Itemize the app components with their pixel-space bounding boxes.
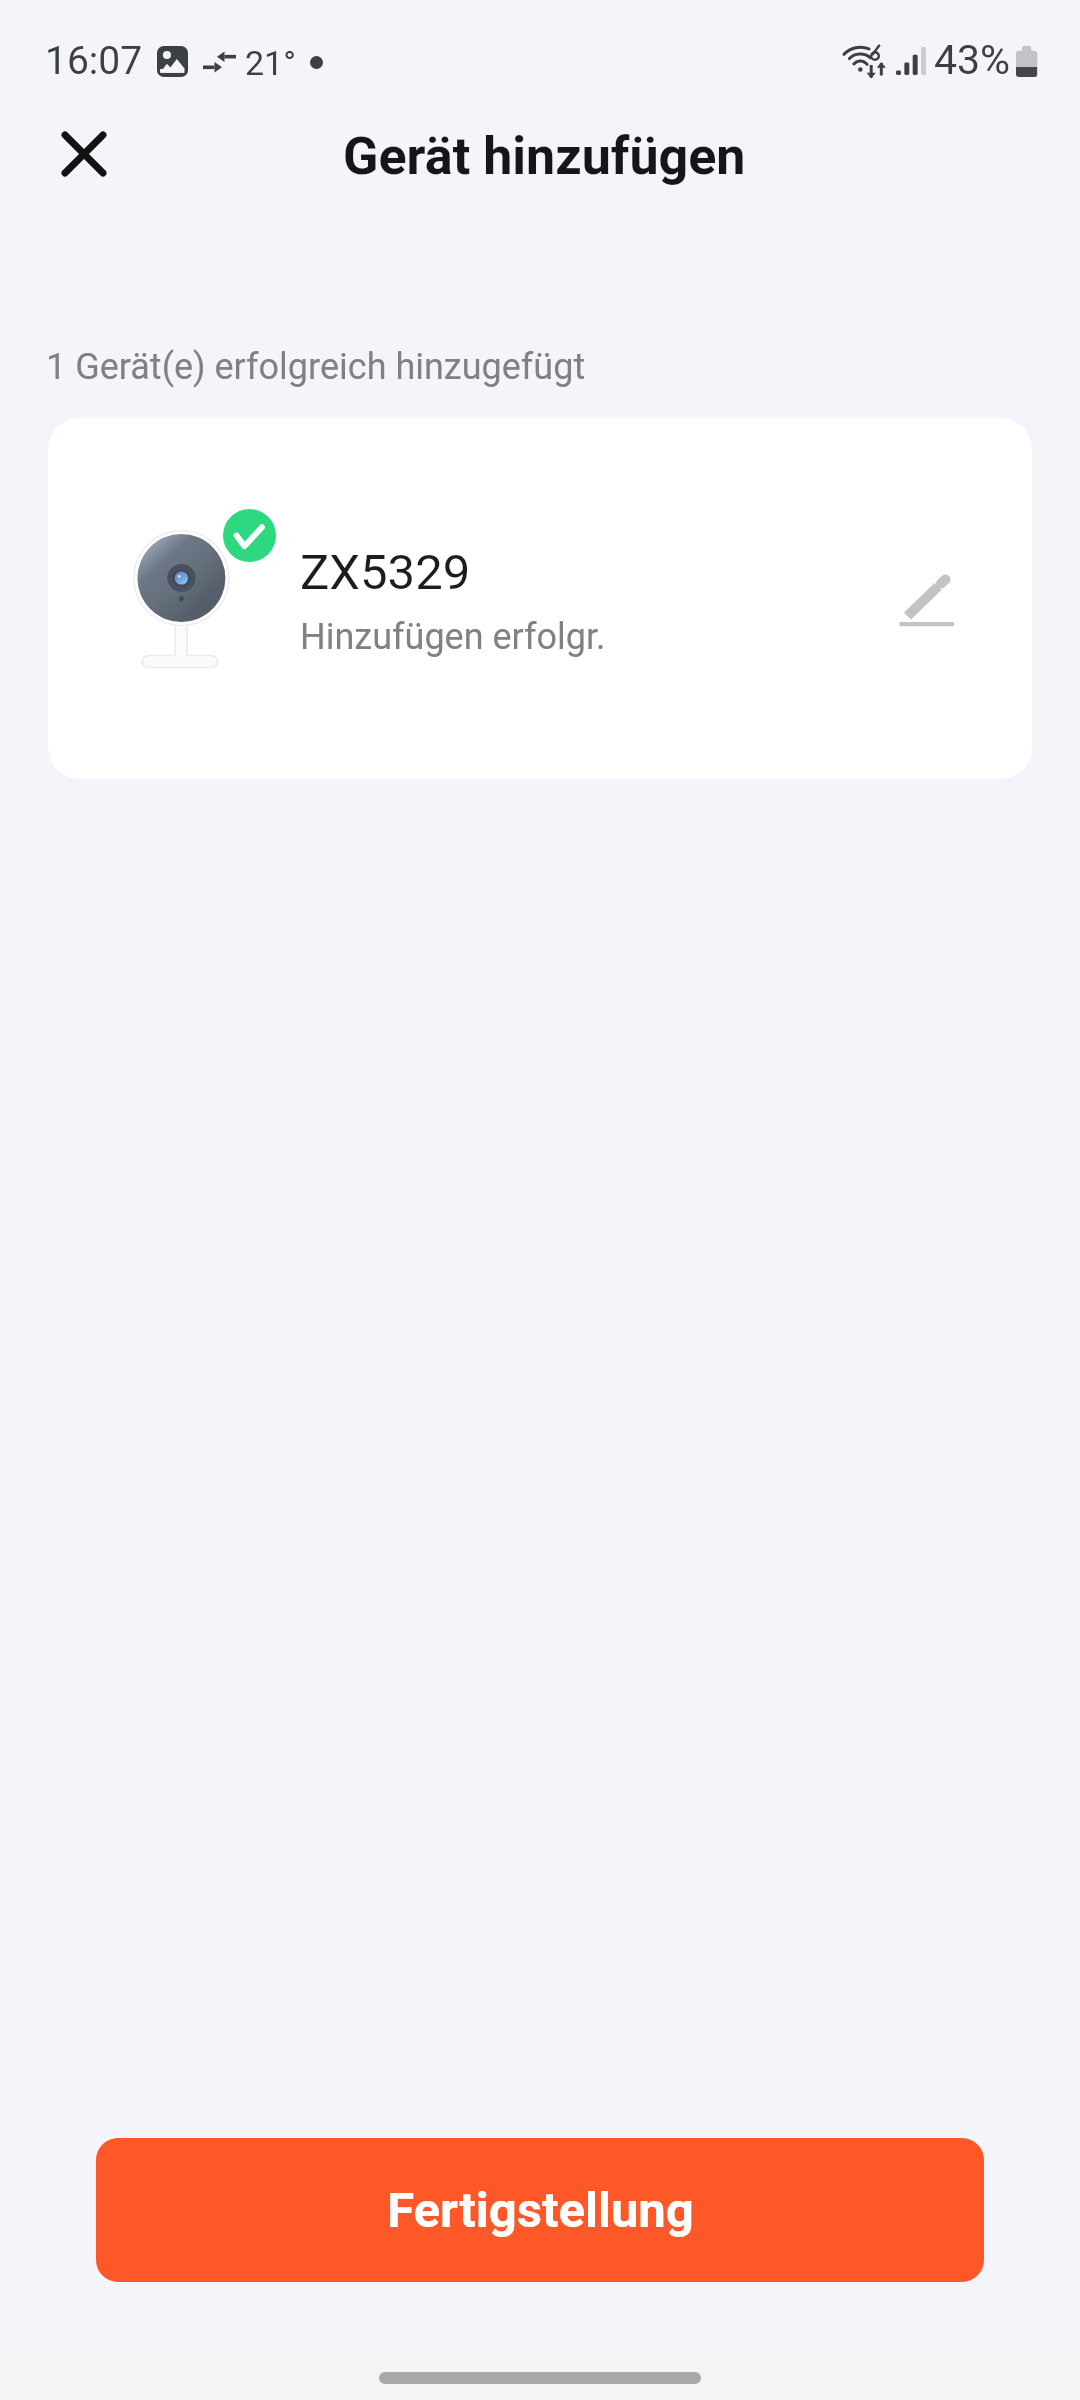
button[interactable]: Close: [29, 102, 139, 206]
staticText: Gerät hinzufügen: [343, 126, 746, 187]
staticText: ZX5329: [300, 544, 471, 601]
staticText: 43%: [934, 36, 1011, 84]
button[interactable]: ZX5329: [48, 418, 1032, 779]
staticText: 21°: [245, 43, 296, 83]
staticText: 1 Gerät(e) erfolgreich hinzugefügt: [46, 346, 586, 388]
staticText: Hinzufügen erfolgr.: [300, 616, 606, 658]
staticText: Fertigstellung: [387, 2182, 694, 2239]
button[interactable]: Rename device: [873, 547, 981, 655]
staticText: 16:07: [45, 38, 143, 84]
button[interactable]: Fertigstellung: [96, 2138, 984, 2282]
